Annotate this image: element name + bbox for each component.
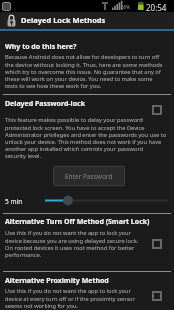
staticText: Alternative Proximity Method [5,276,109,286]
staticText: Alternative Turn Off Method (Smart Lock) [5,217,150,227]
button[interactable] [152,239,162,249]
staticText: Why to do this here? [5,42,77,52]
staticText: Use this if you do not want the app to l… [5,229,139,259]
button[interactable] [152,291,162,301]
staticText: Delayed Password-lock [5,99,86,109]
button[interactable] [152,105,162,115]
button[interactable] [40,193,170,208]
staticText: 66% [121,4,130,10]
button[interactable]: Enter Password [53,166,125,186]
staticText: This feature makes possible to delay you… [5,116,167,160]
staticText: 5 min [5,197,23,206]
staticText: 20:54 [146,2,167,13]
staticText: Use this if you do not want the app to l… [5,287,135,310]
staticText: Enter Password [65,172,113,181]
staticText: Delayed Lock Methods [21,15,106,25]
staticText: Because Android does not allow for devel… [5,53,163,90]
